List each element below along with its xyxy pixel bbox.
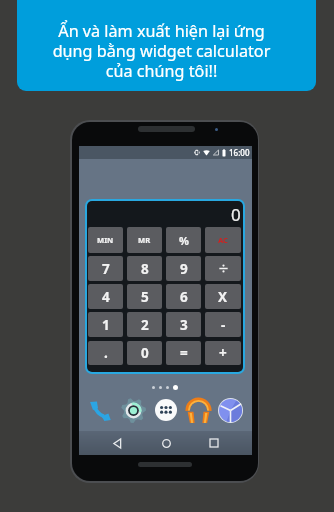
button[interactable]: MIN (88, 227, 123, 253)
button[interactable]: Back (107, 433, 127, 453)
staticText: 5 (141, 288, 149, 306)
staticText: 0 (231, 203, 241, 226)
staticText: . (104, 344, 108, 362)
staticText: MR (138, 235, 151, 245)
button[interactable]: Settings (120, 397, 146, 423)
button[interactable]: + (205, 341, 241, 365)
staticText: - (221, 316, 226, 334)
button[interactable]: Phone (87, 397, 113, 423)
button[interactable]: AC (205, 227, 241, 253)
button[interactable]: Home (156, 433, 176, 453)
staticText: 16:00 (229, 147, 250, 158)
button[interactable]: = (166, 341, 201, 365)
button[interactable]: 9 (166, 256, 201, 281)
staticText: 4 (102, 288, 110, 306)
staticText: Ẩn và làm xuất hiện lại ứng dụng bằng wi… (17, 20, 311, 82)
staticText: MIN (97, 235, 114, 245)
button[interactable]: X (205, 284, 241, 309)
staticText: 0 (141, 344, 149, 362)
staticText: 6 (180, 288, 188, 306)
button[interactable]: 4 (88, 284, 123, 309)
button[interactable]: Apps (153, 397, 179, 423)
staticText: 2 (141, 316, 149, 334)
button[interactable]: 2 (127, 312, 162, 337)
staticText: 7 (102, 260, 110, 278)
button[interactable]: 8 (127, 256, 162, 281)
button[interactable]: . (88, 341, 123, 365)
button[interactable]: 0 (127, 341, 162, 365)
staticText: 3 (180, 316, 188, 334)
staticText: X (218, 288, 228, 306)
button[interactable]: MR (127, 227, 162, 253)
button[interactable]: - (205, 312, 241, 337)
button[interactable]: Music (185, 397, 211, 423)
staticText: + (219, 344, 227, 362)
button[interactable]: % (166, 227, 201, 253)
staticText: % (179, 233, 189, 248)
staticText: AC (218, 235, 228, 245)
button[interactable]: Recent apps (204, 433, 224, 453)
staticText: 1 (102, 316, 110, 334)
button[interactable]: 6 (166, 284, 201, 309)
staticText: 8 (141, 260, 149, 278)
staticText: = (180, 344, 188, 362)
button[interactable]: 7 (88, 256, 123, 281)
staticText: 9 (180, 260, 188, 278)
button[interactable]: 1 (88, 312, 123, 337)
button[interactable]: 3 (166, 312, 201, 337)
button[interactable]: 5 (127, 284, 162, 309)
button[interactable]: Clock (217, 397, 243, 423)
button[interactable] (205, 256, 241, 281)
